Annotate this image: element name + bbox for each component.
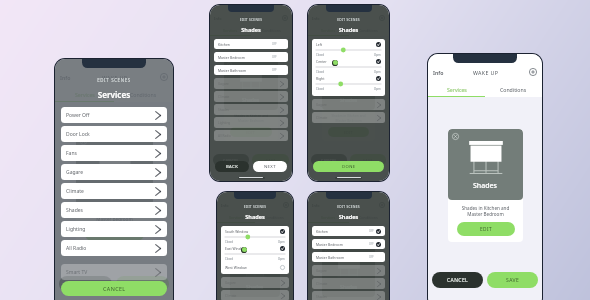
button[interactable]: DONE [313,161,384,172]
button[interactable]: Services [308,26,348,35]
button[interactable]: Services [55,88,114,101]
button[interactable]: Shades [312,291,385,300]
staticText: Gagare [225,281,236,285]
button[interactable]: Services [308,213,348,222]
button[interactable]: Lighting [214,117,288,128]
button[interactable]: Shades [214,104,288,115]
button[interactable]: CANCEL [432,272,483,288]
button[interactable]: Remove service [452,133,459,140]
button[interactable]: Master Bathroom [214,65,288,75]
staticText: Shades [308,213,389,221]
staticText: Gagare [66,169,84,176]
staticText: Shades [340,284,358,291]
button[interactable]: Services [217,213,255,222]
button[interactable]: Door Lock [61,126,167,142]
button[interactable]: EDIT [457,222,515,236]
button[interactable]: CANCEL [311,154,347,166]
staticText: Fans [66,150,77,157]
button[interactable]: BACK [215,161,249,172]
button[interactable]: Conditions [114,88,173,101]
button[interactable]: Kitchen [312,226,385,236]
staticText: Gagare [316,103,327,107]
button[interactable]: Climate [312,112,385,123]
staticText: Shades [473,181,498,191]
staticText: SAVE [506,277,520,284]
button[interactable]: Conditions [255,213,293,222]
button[interactable]: Climate [312,278,385,289]
staticText: EDIT SCENES [210,18,292,22]
button[interactable]: EDIT [85,227,144,241]
button[interactable]: Climate [221,290,289,300]
staticText: Lighting [66,226,86,233]
button[interactable]: SAVE [350,154,386,166]
button[interactable]: Remove service [233,249,238,254]
staticText: EDIT SCENES [55,77,173,83]
button[interactable]: Remove service [325,249,330,254]
button[interactable]: Master Bedroom [312,239,385,249]
button[interactable]: Lighting [61,221,167,237]
button[interactable]: Gagare [221,277,289,288]
button[interactable]: Master Bathroom [312,252,385,262]
staticText: Shades [210,26,292,34]
button[interactable]: Conditions [251,26,292,35]
button[interactable]: CANCEL [213,154,249,166]
button[interactable]: Smart TV [61,264,167,280]
button[interactable]: EDIT [230,127,272,137]
staticText: Master Bedroom [218,55,245,60]
button[interactable]: Remove service [325,62,330,67]
button[interactable]: Info [433,69,444,76]
button[interactable]: Remove service [227,62,232,67]
button[interactable]: All Radio [61,240,167,256]
button[interactable]: Fans [61,145,167,161]
button[interactable]: Power Off [61,107,167,123]
button[interactable]: Conditions [485,83,542,96]
staticText: Climate [316,116,328,120]
button[interactable]: NEXT [253,161,287,172]
button[interactable]: SAVE [252,154,289,166]
staticText: CANCEL [223,158,239,163]
button[interactable]: Climate [61,183,167,199]
button[interactable]: CANCEL [61,281,167,296]
staticText: Open [278,257,285,261]
button[interactable]: Add scene [529,68,537,76]
button[interactable]: All Radio [214,130,288,141]
button[interactable]: Master Bedroom [214,52,288,62]
button[interactable]: Gagare [214,78,288,89]
button[interactable]: Gagare [61,164,167,180]
button[interactable]: Conditions [348,26,389,35]
staticText: Closed [225,257,234,261]
button[interactable]: SAVE [116,276,169,292]
button[interactable]: Conditions [348,213,389,222]
staticText: Closed [316,53,325,57]
button[interactable]: Services [210,26,251,35]
button[interactable]: Climate [214,91,288,102]
button[interactable]: Kitchen [214,39,288,49]
staticText: DONE [342,164,356,170]
button[interactable]: CANCEL [59,276,112,292]
button[interactable]: Add scene [160,73,168,81]
button[interactable]: Gagare [312,99,385,110]
button[interactable]: Shades [61,202,167,218]
button[interactable]: Services [428,83,485,96]
staticText: Conditions [130,91,157,98]
staticText: Shades [246,284,264,291]
staticText: OFF [272,55,277,59]
button[interactable]: SAVE [487,272,538,288]
staticText: Kitchen [316,229,328,234]
button[interactable]: Info [60,74,71,81]
button[interactable]: Remove service [80,138,87,145]
staticText: WAKE UP [473,69,499,76]
button[interactable]: Gagare [312,265,385,276]
